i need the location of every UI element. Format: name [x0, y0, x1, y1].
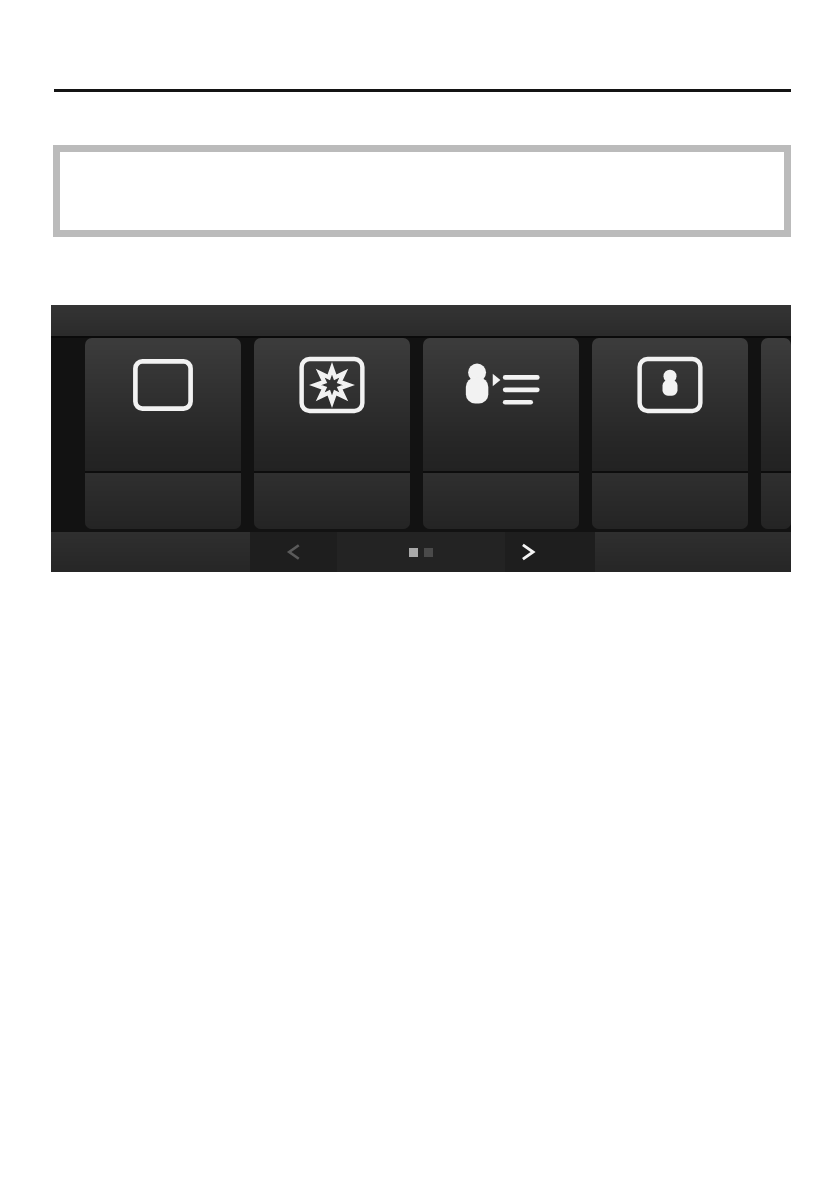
button[interactable]: Presenter: [423, 338, 579, 529]
button[interactable]: Next page: [505, 532, 595, 572]
button[interactable]: Previous page: [250, 532, 337, 572]
button[interactable]: Contact: [592, 338, 748, 529]
button[interactable]: Screen: [85, 338, 241, 529]
button[interactable]: Effects: [254, 338, 410, 529]
button[interactable]: More: [761, 338, 791, 529]
